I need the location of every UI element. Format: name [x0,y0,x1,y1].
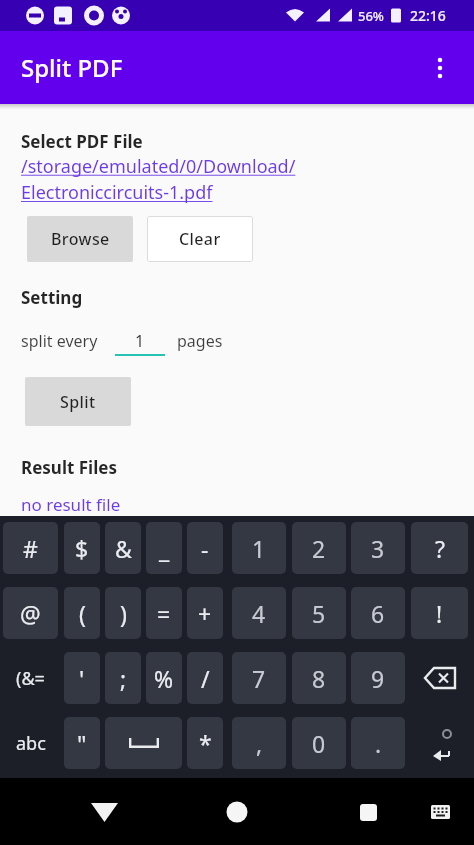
staticText: % [154,663,174,694]
staticText: 6 [371,598,385,629]
button[interactable]: . [351,717,405,769]
button[interactable] [411,652,468,704]
staticText: . [375,728,382,759]
staticText: ) [120,598,127,629]
staticText: & [115,533,132,564]
staticText: 1 [252,533,266,564]
staticText: 8 [312,663,326,694]
staticText: 3 [371,533,385,564]
staticText: (&= [16,666,45,691]
staticText: ( [79,598,86,629]
button[interactable]: " [64,717,100,769]
staticText: pages [177,330,223,352]
staticText: ; [120,663,127,694]
staticText: Setting [21,286,83,309]
staticText: - [201,533,209,564]
staticText: 0 [312,728,326,759]
staticText: 22:16 [410,6,446,25]
staticText: 7 [252,663,266,694]
button[interactable] [84,792,124,832]
button[interactable]: % [146,652,182,704]
button[interactable]: abc [3,717,58,769]
staticText: Browse [51,228,110,250]
staticText: * [199,728,212,759]
button[interactable]: + [187,587,223,639]
staticText: Result Files [21,456,117,479]
staticText: = [157,598,171,629]
button[interactable]: 8 [292,652,346,704]
button[interactable]: / [187,652,223,704]
staticText: + [198,598,212,629]
button[interactable]: ! [411,587,468,639]
staticText: Split [60,391,96,413]
button[interactable] [217,792,257,832]
button[interactable]: 9 [351,652,405,704]
button[interactable] [411,717,468,769]
button[interactable]: 6 [351,587,405,639]
staticText: ' [79,663,85,694]
button[interactable] [422,794,458,830]
staticText: " [77,728,87,759]
staticText: # [23,533,38,564]
button[interactable]: $ [64,522,100,574]
button[interactable] [348,792,388,832]
button[interactable] [105,717,182,769]
button[interactable]: Clear [147,216,253,262]
button[interactable]: Browse [27,216,133,262]
staticText: / [201,663,210,694]
button[interactable]: ; [105,652,141,704]
button[interactable]: 4 [232,587,286,639]
button[interactable]: /storage/emulated/0/Download/ Electronic… [21,154,296,205]
staticText: 1 [135,330,145,352]
button[interactable]: # [3,522,58,574]
button[interactable]: 1 [115,326,165,356]
staticText: ! [436,598,443,629]
button[interactable]: ) [105,587,141,639]
staticText: @ [20,598,41,629]
staticText: split every [21,330,98,352]
button[interactable]: no result file [21,493,121,516]
button[interactable]: * [187,717,223,769]
staticText: 9 [371,663,385,694]
button[interactable]: (&= [3,652,58,704]
button[interactable]: 1 [232,522,286,574]
staticText: Select PDF File [21,130,143,153]
staticText: 4 [252,598,266,629]
button[interactable]: 2 [292,522,346,574]
button[interactable]: 5 [292,587,346,639]
button[interactable]: ( [64,587,100,639]
staticText: ? [435,533,445,564]
button[interactable]: - [187,522,223,574]
staticText: $ [75,533,89,564]
button[interactable]: 0 [292,717,346,769]
staticText: 56% [358,7,384,25]
staticText: Split PDF [21,51,123,84]
button[interactable]: Split [25,377,131,426]
button[interactable]: , [232,717,286,769]
button[interactable]: ? [411,522,468,574]
button[interactable]: 3 [351,522,405,574]
button[interactable]: 7 [232,652,286,704]
staticText: , [256,728,263,759]
staticText: abc [16,731,46,756]
button[interactable]: & [105,522,141,574]
button[interactable]: ' [64,652,100,704]
button[interactable] [420,48,460,88]
staticText: 5 [312,598,326,629]
staticText: 2 [312,533,326,564]
staticText: _ [159,533,170,564]
staticText: Clear [179,228,221,250]
button[interactable]: @ [3,587,58,639]
button[interactable]: _ [146,522,182,574]
button[interactable]: = [146,587,182,639]
